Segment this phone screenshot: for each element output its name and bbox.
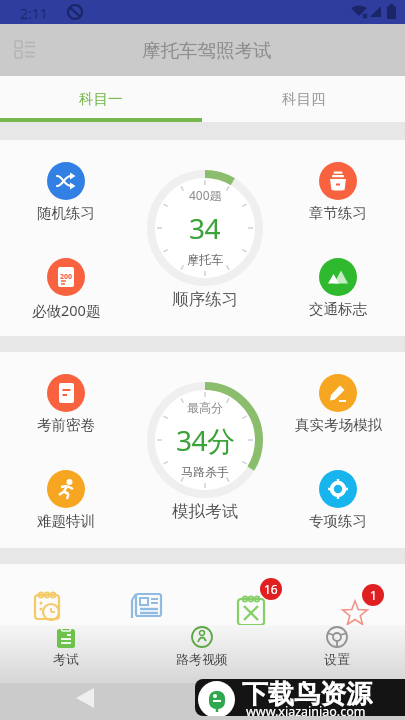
button[interactable]: 路考视频 — [152, 626, 252, 684]
button[interactable]: 真实考场模拟 — [268, 374, 405, 434]
button[interactable]: 章节练习 — [268, 162, 405, 222]
staticText: 34分 — [176, 421, 235, 459]
button[interactable]: 科目一 — [0, 76, 202, 122]
staticText: 科目一 — [79, 90, 123, 108]
button[interactable] — [33, 590, 67, 624]
button[interactable]: 考试 — [16, 626, 116, 684]
staticText: 马路杀手 — [181, 464, 229, 479]
staticText: 1 — [370, 587, 377, 603]
staticText: 最高分 — [187, 400, 223, 415]
button[interactable]: 200 — [0, 258, 136, 320]
button[interactable]: 科目四 — [202, 76, 405, 122]
staticText: 16 — [264, 581, 278, 597]
button[interactable]: 设置 — [287, 626, 387, 684]
button[interactable] — [236, 594, 270, 625]
button[interactable]: 400题 — [145, 168, 265, 288]
button[interactable]: 交通标志 — [268, 258, 405, 318]
staticText: 必做200题 — [32, 300, 101, 320]
button[interactable] — [131, 592, 163, 624]
staticText: 34 — [189, 209, 221, 247]
staticText: 2:11 — [20, 4, 48, 23]
button[interactable] — [341, 600, 371, 625]
button[interactable]: 专项练习 — [268, 470, 405, 530]
staticText: 路考视频 — [176, 651, 228, 667]
staticText: 设置 — [324, 651, 350, 667]
staticText: 顺序练习 — [172, 289, 238, 310]
staticText: 考试 — [53, 651, 79, 667]
staticText: 200 — [60, 272, 73, 282]
staticText: 400题 — [189, 187, 222, 203]
staticText: 专项练习 — [309, 512, 367, 530]
button[interactable]: 下载鸟资源 — [195, 679, 405, 716]
staticText: 下载鸟资源 — [242, 679, 372, 711]
staticText: www.xiazainiao.com — [246, 703, 366, 716]
button[interactable]: 随机练习 — [0, 162, 136, 222]
staticText: 真实考场模拟 — [295, 416, 382, 434]
button[interactable]: 考前密卷 — [0, 374, 136, 434]
staticText: 摩托车驾照考试 — [142, 39, 272, 62]
button[interactable]: 最高分 — [145, 380, 265, 500]
staticText: 考前密卷 — [37, 416, 95, 434]
staticText: 模拟考试 — [172, 501, 238, 522]
staticText: 章节练习 — [309, 204, 367, 222]
staticText: 交通标志 — [309, 300, 367, 318]
staticText: 随机练习 — [37, 204, 95, 222]
staticText: 难题特训 — [37, 512, 95, 530]
staticText: 摩托车 — [187, 252, 223, 267]
button[interactable]: 难题特训 — [0, 470, 136, 530]
button[interactable] — [14, 40, 38, 64]
staticText: 科目四 — [282, 90, 326, 108]
